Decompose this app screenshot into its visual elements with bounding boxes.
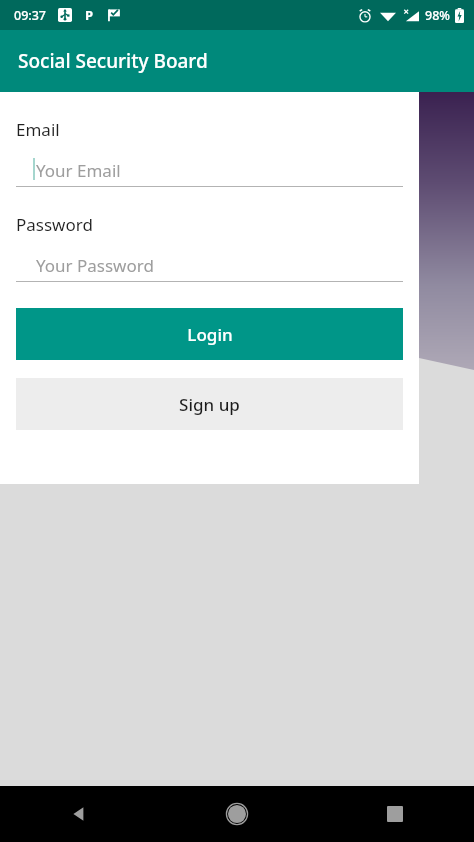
- staticText: Email: [16, 118, 60, 141]
- staticText: Login: [187, 323, 233, 346]
- button[interactable]: Sign up: [16, 378, 403, 430]
- staticText: Your Password: [36, 254, 154, 277]
- staticText: Social Security Board: [18, 48, 208, 74]
- staticText: Sign up: [179, 393, 240, 416]
- button[interactable]: Login: [16, 308, 403, 360]
- button[interactable]: Back: [0, 786, 158, 842]
- staticText: 09:37: [14, 7, 47, 24]
- button[interactable]: Your Password: [16, 248, 403, 282]
- staticText: 98%: [425, 7, 450, 24]
- button[interactable]: Recent apps: [316, 786, 474, 842]
- staticText: P: [85, 6, 94, 24]
- staticText: Password: [16, 213, 93, 236]
- staticText: Your Email: [36, 159, 121, 182]
- button[interactable]: Home: [158, 786, 316, 842]
- button[interactable]: Your Email: [16, 153, 403, 187]
